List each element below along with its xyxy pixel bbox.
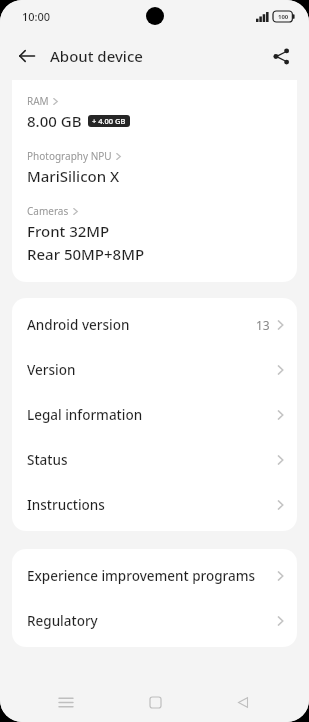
staticText: Instructions [27,496,277,514]
staticText: RAM [27,94,49,108]
staticText: Rear 50MP+8MP [27,244,145,264]
button[interactable]: Home [133,682,177,722]
staticText: 13 [256,317,270,333]
button[interactable]: RAM [27,94,282,131]
staticText: Regulatory [27,612,277,630]
staticText: 10:00 [22,9,51,24]
staticText: 100 [278,13,289,21]
button[interactable]: Experience improvement programs [12,553,297,598]
button[interactable]: Version [12,347,297,392]
button[interactable]: Instructions [12,482,297,527]
staticText: Front 32MP [27,221,110,241]
button[interactable]: Regulatory [12,598,297,643]
button[interactable]: Legal information [12,392,297,437]
button[interactable]: Share [265,40,297,72]
button[interactable]: Photography NPU [27,149,282,186]
staticText: MariSilicon X [27,166,120,186]
button[interactable]: Status [12,437,297,482]
staticText: Experience improvement programs [27,567,277,585]
button[interactable]: Cameras [27,204,282,264]
button[interactable]: Android version [12,302,297,347]
button[interactable]: Back [221,682,265,722]
staticText: 8.00 GB [27,111,82,131]
staticText: Legal information [27,406,277,424]
staticText: About device [50,46,143,66]
button[interactable]: Recent apps [44,682,88,722]
staticText: Android version [27,316,256,334]
staticText: Version [27,361,277,379]
staticText: Cameras [27,204,69,218]
button[interactable]: Back [10,39,44,73]
staticText: Status [27,451,277,469]
staticText: + 4.00 GB [92,116,126,126]
staticText: Photography NPU [27,149,112,163]
